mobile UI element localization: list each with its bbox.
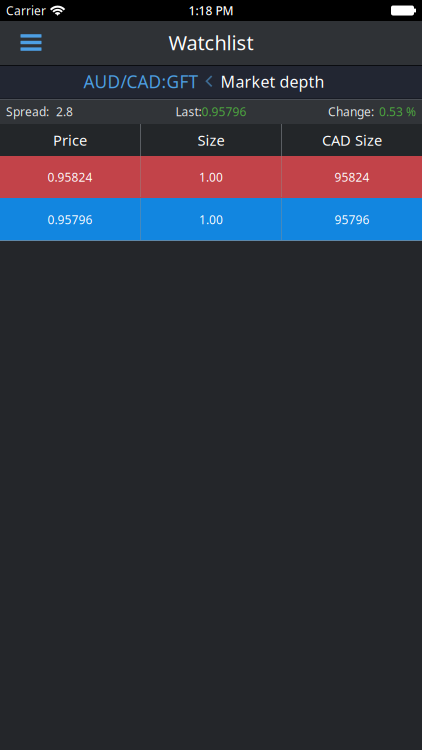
staticText: 0.95796 xyxy=(201,103,246,119)
staticText: Spread: xyxy=(6,103,49,119)
staticText: AUD/CAD:GFT xyxy=(83,70,198,93)
staticText: Market depth xyxy=(220,71,324,92)
button[interactable]: Menu xyxy=(0,22,62,64)
staticText: 1.00 xyxy=(199,169,223,185)
staticText: 95824 xyxy=(334,169,369,185)
staticText: Carrier xyxy=(6,2,46,18)
button[interactable]: 0.95796 xyxy=(0,198,422,241)
staticText: 0.95796 xyxy=(47,211,92,227)
staticText: CAD Size xyxy=(322,130,382,150)
staticText: 0.53 % xyxy=(379,103,416,119)
staticText: Size xyxy=(197,130,224,150)
staticText: Change: xyxy=(328,103,374,119)
staticText: 0.95824 xyxy=(47,169,92,185)
staticText: 95796 xyxy=(334,211,369,227)
staticText: 1:18 PM xyxy=(188,2,233,18)
button[interactable]: AUD/CAD:GFT xyxy=(83,70,205,93)
staticText: Price xyxy=(53,130,87,150)
staticText: 1.00 xyxy=(199,211,223,227)
staticText: Watchlist xyxy=(168,29,253,56)
staticText: 2.8 xyxy=(56,103,73,119)
button[interactable]: 0.95824 xyxy=(0,156,422,198)
staticText: Last: xyxy=(175,103,201,119)
